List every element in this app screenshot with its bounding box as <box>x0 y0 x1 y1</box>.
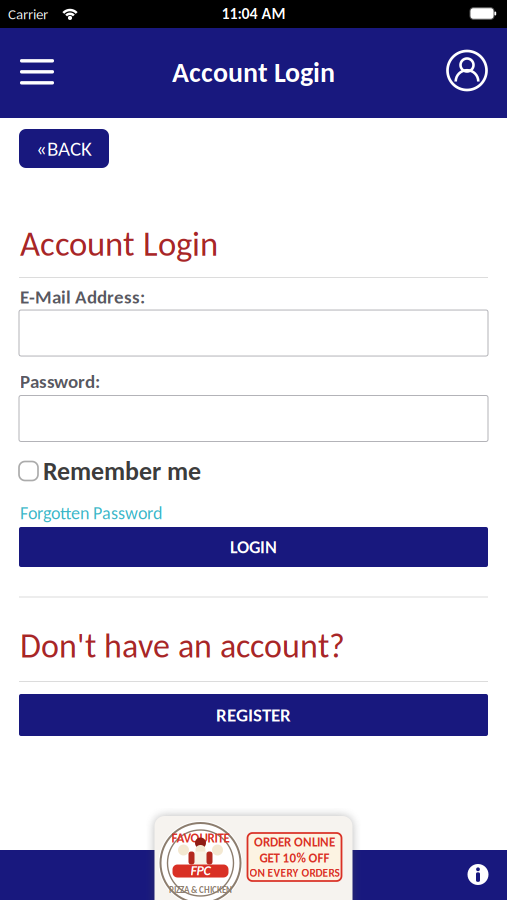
button[interactable]: Info <box>463 859 493 889</box>
staticText: Forgotten Password <box>20 502 162 524</box>
staticText: PIZZA & CHICKEN <box>169 884 232 895</box>
staticText: ON EVERY ORDERS <box>249 866 339 880</box>
button[interactable]: «BACK <box>19 129 109 168</box>
button[interactable]: Menu <box>15 51 59 93</box>
staticText: ORDER ONLINE <box>254 834 335 850</box>
staticText: Account Login <box>20 223 218 265</box>
staticText: Don't have an account? <box>20 625 345 667</box>
button[interactable]: REGISTER <box>19 694 488 736</box>
staticText: FAVOURITE <box>171 830 229 846</box>
staticText: Remember me <box>43 455 201 487</box>
staticText: FPC <box>190 862 210 879</box>
button[interactable]: Remember me <box>19 458 201 484</box>
staticText: 11:04 AM <box>221 4 285 23</box>
button[interactable]: FAVOURITE <box>154 816 352 900</box>
staticText: «BACK <box>36 136 92 161</box>
button[interactable]: Account <box>446 49 488 91</box>
staticText: Account Login <box>172 55 335 90</box>
button[interactable]: LOGIN <box>19 527 488 567</box>
staticText: LOGIN <box>230 536 277 558</box>
staticText: Carrier <box>8 5 48 23</box>
staticText: REGISTER <box>216 703 291 727</box>
staticText: GET 10% OFF <box>259 850 329 866</box>
staticText: Password: <box>20 370 100 393</box>
staticText: E-Mail Address: <box>20 285 145 309</box>
button[interactable]: Forgotten Password <box>20 502 162 524</box>
